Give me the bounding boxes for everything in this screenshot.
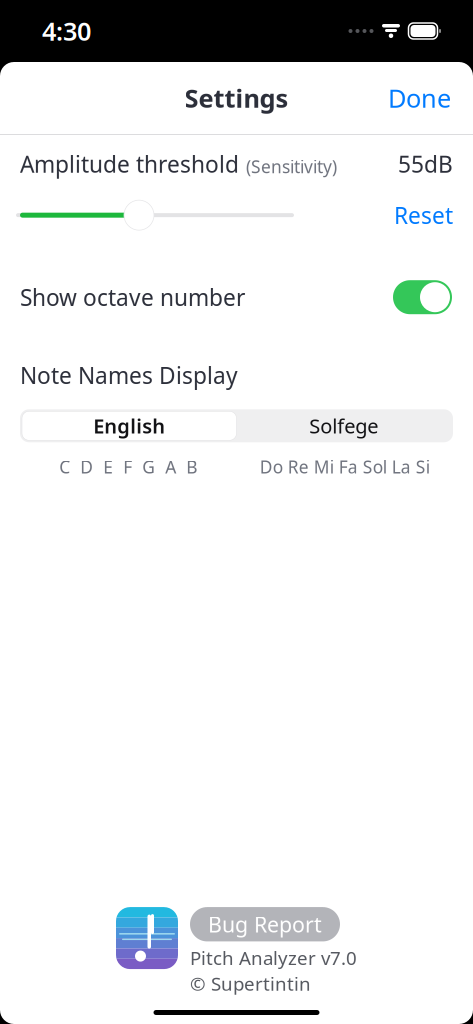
button[interactable]: Show octave number [393,280,452,314]
button[interactable]: Solfege [236,411,451,440]
button[interactable]: Done [374,73,465,123]
staticText: Bug Report [208,910,322,938]
staticText: (Sensitivity) [246,155,337,178]
button[interactable]: English [22,411,236,440]
staticText: 4:30 [42,14,91,48]
staticText: Amplitude threshold [20,149,239,179]
staticText: Show octave number [20,282,245,312]
staticText: 55dB [398,149,453,179]
staticText: Done [388,81,451,115]
button[interactable]: Reset [388,196,459,234]
staticText: Reset [394,200,453,230]
staticText: Solfege [309,412,378,439]
staticText: © Supertintin [190,971,311,996]
staticText: C D E F G A B [59,455,197,478]
staticText: Do Re Mi Fa Sol La Si [260,455,430,478]
staticText: Settings [184,81,288,115]
button[interactable]: Bug Report [190,907,340,941]
staticText: English [93,412,165,439]
staticText: Pitch Analyzer v7.0 [190,945,357,970]
staticText: Note Names Display [20,360,238,390]
